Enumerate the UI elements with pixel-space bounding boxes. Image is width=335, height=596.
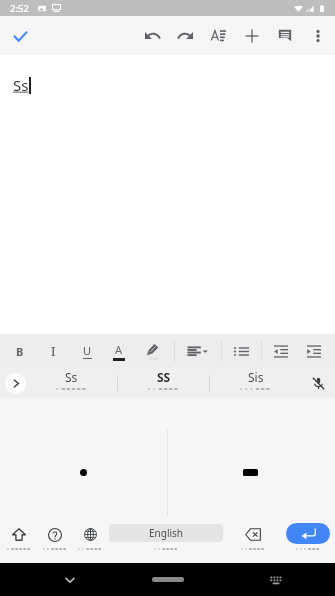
button[interactable]: Home (152, 577, 184, 582)
button[interactable]: Change language (73, 516, 107, 563)
button[interactable]: Sis (210, 368, 301, 398)
button[interactable]: More suggestions (5, 373, 26, 394)
button[interactable]: Voice input disabled (301, 368, 335, 398)
button[interactable]: Done (4, 20, 36, 52)
button[interactable]: Hide keyboard (56, 566, 84, 594)
button[interactable]: English (109, 524, 223, 542)
button[interactable]: Italic (37, 334, 69, 368)
button[interactable]: Comments (268, 16, 301, 55)
staticText: 2:52 (10, 2, 29, 15)
button[interactable]: Text formatting (202, 16, 235, 55)
button[interactable]: Decrease indent (265, 334, 297, 368)
button[interactable]: Ss (26, 368, 117, 398)
button[interactable]: Help (38, 516, 72, 563)
button[interactable]: Underline (71, 334, 103, 368)
button[interactable]: Bold (4, 334, 36, 368)
button[interactable]: Insert (235, 16, 268, 55)
button[interactable]: Shift (2, 516, 36, 563)
button[interactable]: Bullet list (225, 334, 257, 368)
staticText: I (51, 343, 56, 359)
button[interactable]: Switch input method (263, 567, 289, 593)
staticText: Sis (248, 369, 264, 385)
button[interactable]: Redo (169, 16, 202, 55)
button[interactable]: Highlight colour (137, 334, 169, 368)
staticText: English (149, 526, 184, 540)
staticText: SS (157, 369, 171, 385)
button[interactable]: Undo (136, 16, 169, 55)
button[interactable]: SS (118, 368, 209, 398)
button[interactable]: Braille dot 1 (0, 398, 167, 516)
staticText: B (16, 344, 24, 359)
staticText: Ss (65, 369, 78, 385)
staticText: A (115, 342, 123, 357)
button[interactable]: More options (301, 16, 334, 55)
staticText: Ss (13, 75, 29, 95)
staticText: U (83, 343, 92, 358)
button[interactable]: Enter (286, 523, 330, 544)
button[interactable]: Backspace (236, 516, 270, 563)
button[interactable]: Alignment (181, 334, 213, 368)
button[interactable]: Text colour (103, 334, 135, 368)
button[interactable]: Braille dot 4 (167, 398, 335, 516)
button[interactable]: Increase indent (298, 334, 330, 368)
